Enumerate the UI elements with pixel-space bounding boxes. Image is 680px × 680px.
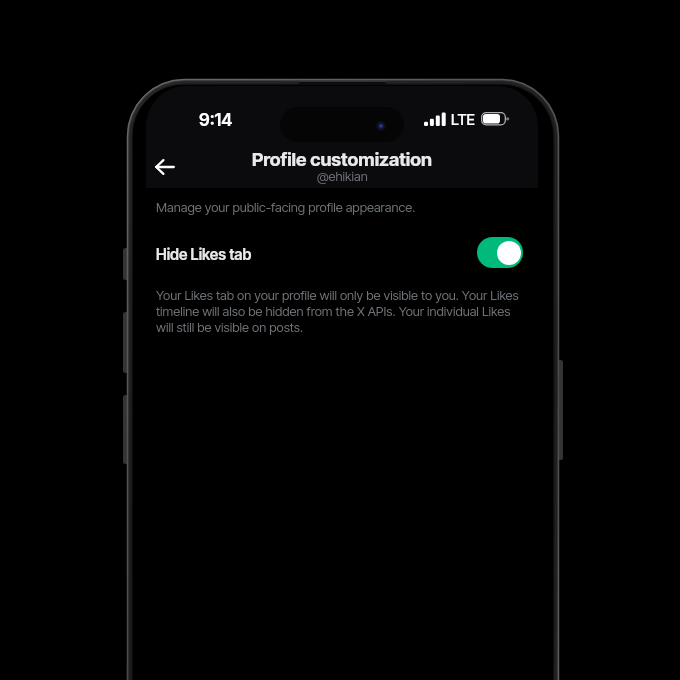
button[interactable]: Back bbox=[143, 145, 187, 189]
staticText: @ehikian bbox=[317, 168, 368, 184]
staticText: Manage your public-facing profile appear… bbox=[156, 199, 416, 215]
staticText: Profile customization bbox=[252, 148, 432, 170]
staticText: Your Likes tab on your profile will only… bbox=[156, 287, 528, 335]
staticText: 9:14 bbox=[199, 109, 233, 130]
staticText: Hide Likes tab bbox=[156, 245, 252, 263]
button[interactable]: Hide Likes tab bbox=[156, 235, 528, 273]
staticText: LTE bbox=[451, 110, 475, 128]
